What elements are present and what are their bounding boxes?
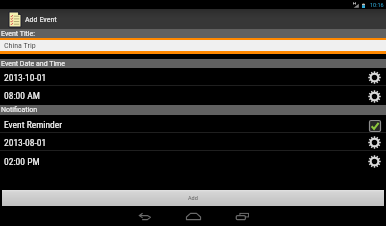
staticText: Event Title: [1,30,35,38]
button[interactable]: China Trip [0,40,386,51]
staticText: 02:00 PM [4,156,40,167]
button[interactable]: Event Reminder [0,115,386,133]
button[interactable]: Back [131,207,159,225]
button[interactable]: Home [179,207,207,225]
staticText: 10:16 [370,2,384,8]
staticText: 2013-08-01 [4,137,47,148]
staticText: China Trip [4,41,36,50]
button[interactable]: 2013-10-01 [0,68,386,86]
button[interactable]: Recent apps [228,207,256,225]
button[interactable]: Add Event [0,9,386,29]
staticText: Event Date and Time [1,60,65,68]
button[interactable]: Settings [366,69,382,85]
button[interactable]: Settings [366,88,382,104]
staticText: Add Event [25,15,57,24]
button[interactable]: Settings [366,134,382,150]
button[interactable]: Add [2,190,384,206]
button[interactable]: Event reminder [369,120,381,132]
staticText: 08:00 AM [4,90,40,101]
staticText: Event Reminder [4,119,63,130]
button[interactable]: 02:00 PM [0,151,386,171]
staticText: Add [188,195,198,201]
staticText: 2013-10-01 [4,72,47,83]
button[interactable]: 2013-08-01 [0,133,386,151]
staticText: Notification [1,106,38,114]
button[interactable]: 08:00 AM [0,86,386,105]
button[interactable]: Settings [366,153,382,169]
